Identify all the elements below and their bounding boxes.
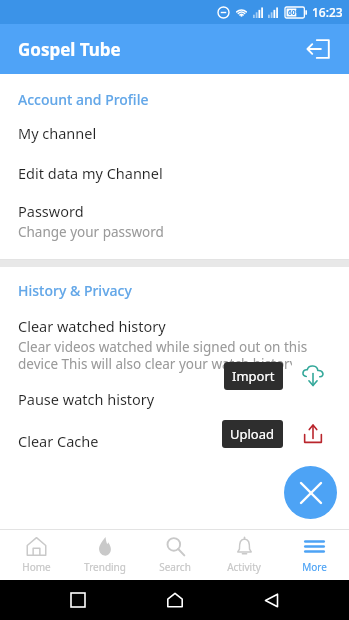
button[interactable]: Import <box>224 352 337 400</box>
staticText: More <box>302 560 327 574</box>
button[interactable]: Trending <box>71 532 139 578</box>
button[interactable]: Recents <box>60 582 96 618</box>
button[interactable]: My channel <box>0 121 349 145</box>
button[interactable]: Password <box>0 199 349 243</box>
button: Account and Profile <box>0 90 349 109</box>
staticText: Upload <box>230 425 275 443</box>
button: History & Privacy <box>0 281 349 300</box>
button[interactable]: Home <box>2 532 70 578</box>
button[interactable]: Upload <box>222 410 337 458</box>
staticText: Search <box>159 560 191 574</box>
button[interactable]: Home <box>157 582 193 618</box>
staticText: 16:23 <box>312 4 343 20</box>
staticText: Clear videos watched while signed out on… <box>18 338 308 373</box>
button[interactable]: Log out <box>297 28 339 70</box>
staticText: Gospel Tube <box>18 38 121 61</box>
staticText: Activity <box>227 560 261 574</box>
button[interactable]: Activity <box>210 532 278 578</box>
staticText: Edit data my Channel <box>18 163 163 183</box>
staticText: Change your password <box>18 223 164 241</box>
staticText: Import <box>232 367 275 385</box>
other: Import <box>301 364 325 388</box>
staticText: Password <box>18 201 84 221</box>
other: Upload <box>302 423 324 445</box>
staticText: 60% <box>288 8 302 17</box>
button[interactable]: Pause watch history <box>0 387 349 411</box>
staticText: Home <box>22 560 51 574</box>
button[interactable]: Clear Cache <box>0 429 349 453</box>
button[interactable]: Clear watched history <box>0 314 349 375</box>
staticText: Account and Profile <box>18 90 149 109</box>
button[interactable]: Search <box>141 532 209 578</box>
staticText: Trending <box>84 560 126 574</box>
staticText: Clear Cache <box>18 431 99 451</box>
staticText: My channel <box>18 123 97 143</box>
button[interactable]: Close menu <box>284 466 337 519</box>
button[interactable]: More <box>280 532 348 578</box>
staticText: Pause watch history <box>18 389 155 409</box>
staticText: Clear watched history <box>18 316 166 336</box>
button[interactable]: Back <box>253 582 289 618</box>
staticText: History & Privacy <box>18 281 132 300</box>
button[interactable]: Edit data my Channel <box>0 161 349 185</box>
